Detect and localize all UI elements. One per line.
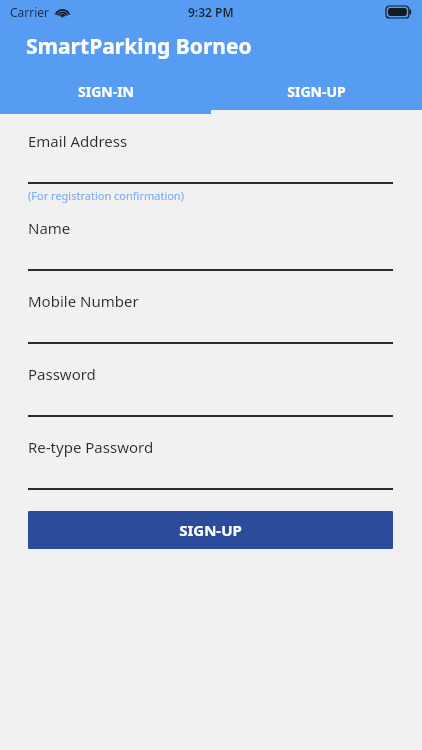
button[interactable]: SIGN-IN (0, 69, 211, 114)
button[interactable]: Mobile Number (28, 291, 393, 344)
staticText: SIGN-UP (287, 82, 346, 101)
button[interactable]: Password (28, 364, 393, 417)
button[interactable]: Name (28, 218, 393, 271)
staticText: Password (28, 364, 96, 384)
staticText: SmartParking Borneo (26, 32, 252, 61)
staticText: Mobile Number (28, 291, 139, 311)
button[interactable]: Email Address (28, 131, 393, 203)
button[interactable]: SIGN-UP (211, 69, 422, 114)
staticText: Name (28, 218, 71, 238)
button[interactable]: SIGN-UP (28, 511, 393, 549)
staticText: SIGN-IN (78, 82, 134, 101)
staticText: 9:32 PM (188, 4, 234, 20)
staticText: Email Address (28, 131, 128, 151)
button[interactable]: Re-type Password (28, 437, 393, 490)
staticText: Carrier (10, 4, 50, 20)
staticText: Re-type Password (28, 437, 154, 457)
staticText: SIGN-UP (179, 520, 242, 540)
staticText: (For registration confirmation) (28, 188, 184, 203)
